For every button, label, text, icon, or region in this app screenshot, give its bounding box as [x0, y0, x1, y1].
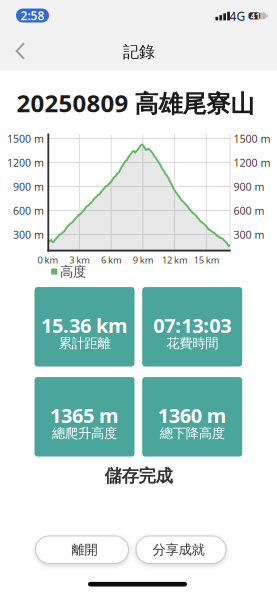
- staticText: 1200 m: [233, 155, 270, 170]
- staticText: 1365 m: [50, 402, 119, 428]
- button[interactable]: [0, 0, 277, 600]
- staticText: 41: [251, 11, 261, 21]
- staticText: 20250809 高雄尾寮山: [16, 87, 254, 119]
- staticText: 900 m: [233, 179, 264, 194]
- staticText: 花費時間: [166, 335, 218, 351]
- staticText: 300 m: [233, 227, 264, 242]
- staticText: 3 km: [69, 254, 90, 266]
- staticText: 2:58: [20, 7, 44, 23]
- staticText: 0 km: [37, 254, 58, 266]
- staticText: 900 m: [13, 179, 44, 194]
- staticText: 1200 m: [7, 155, 44, 170]
- staticText: 600 m: [13, 203, 44, 218]
- staticText: 累計距離: [58, 335, 110, 351]
- staticText: 15 km: [194, 254, 220, 266]
- button[interactable]: 離開: [35, 536, 128, 563]
- button[interactable]: 分享成就: [136, 536, 226, 563]
- staticText: 600 m: [233, 203, 264, 218]
- staticText: 300 m: [13, 227, 44, 242]
- staticText: 離開: [71, 541, 97, 558]
- staticText: 1500 m: [233, 131, 270, 146]
- staticText: 07:13:03: [153, 312, 231, 338]
- staticText: 高度: [60, 264, 86, 280]
- staticText: 12 km: [162, 254, 188, 266]
- staticText: 9 km: [133, 254, 154, 266]
- staticText: 總爬升高度: [52, 425, 117, 441]
- staticText: 分享成就: [152, 541, 204, 558]
- staticText: 儲存完成: [104, 465, 172, 487]
- staticText: 4G: [229, 8, 245, 24]
- staticText: 15.36 km: [41, 312, 128, 338]
- staticText: 總下降高度: [160, 425, 225, 441]
- staticText: 1500 m: [7, 131, 44, 146]
- staticText: 記錄: [123, 42, 155, 62]
- staticText: 6 km: [101, 254, 122, 266]
- staticText: 1360 m: [158, 402, 227, 428]
